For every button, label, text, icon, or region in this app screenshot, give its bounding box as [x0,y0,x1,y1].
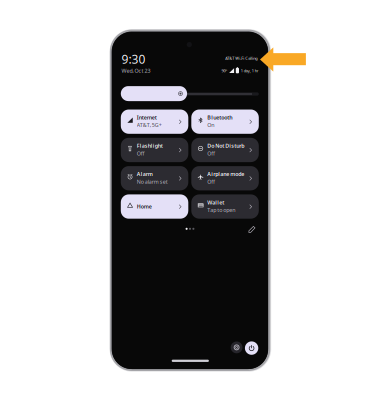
staticText: Off [207,178,215,185]
staticText: Alarm [137,170,153,178]
staticText: Off [207,150,215,157]
staticText: AT&T, 5G+ [137,121,162,129]
button[interactable]: Edit quick settings [248,226,256,233]
button[interactable]: Home [121,194,188,219]
staticText: AT&T Wi-Fi Calling [225,56,257,61]
button[interactable]: Internet [121,109,188,134]
button[interactable]: Bluetooth [191,109,259,134]
staticText: Tap to open [207,206,235,213]
button[interactable]: Settings [231,341,242,353]
staticText: 9:30 [122,51,146,67]
staticText: Off [137,150,145,157]
staticText: Internet [137,114,157,121]
staticText: Home [137,203,152,210]
button[interactable]: Do Not Disturb [191,138,259,162]
staticText: On [207,121,214,129]
button[interactable]: Airplane mode [191,166,259,190]
staticText: Do Not Disturb [207,142,244,149]
staticText: Wed, Oct 23 [122,67,151,74]
staticText: No alarm set [137,178,168,185]
button[interactable]: Flashlight [121,138,188,162]
button[interactable]: Power [245,341,258,355]
staticText: Flashlight [137,142,163,149]
staticText: 90° [221,68,227,73]
staticText: Wallet [207,199,224,206]
staticText: Bluetooth [207,114,232,121]
staticText: Airplane mode [207,170,244,178]
button[interactable]: Alarm [121,166,188,190]
staticText: 1 day, 1 hr [241,68,259,73]
button[interactable]: Wallet [191,194,259,219]
